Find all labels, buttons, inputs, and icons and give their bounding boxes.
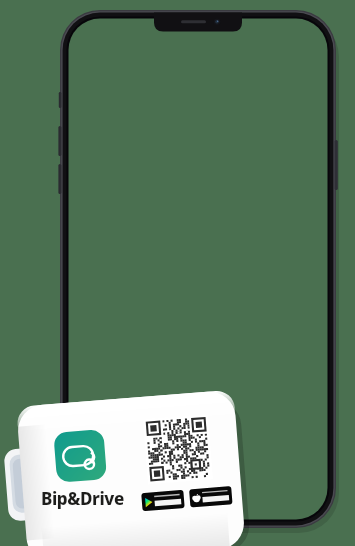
button[interactable]: Smartphone [0, 0, 355, 546]
button[interactable]: Download on the App Store [186, 491, 231, 512]
button[interactable]: Bip&Drive [41, 487, 139, 509]
button[interactable]: Get it on Google Play [138, 491, 183, 512]
staticText: Bip&Drive [41, 487, 124, 509]
button[interactable]: Bip and Drive toll device [0, 0, 355, 546]
